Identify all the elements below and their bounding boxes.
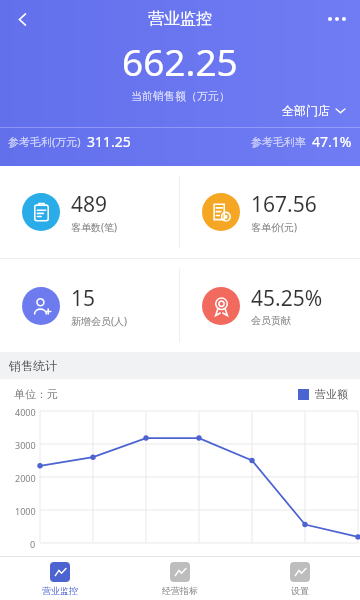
staticText: 营业监控 [42, 585, 78, 596]
staticText: 全部门店 [282, 103, 330, 118]
staticText: 单位：元 [14, 387, 58, 401]
staticText: 15 [71, 284, 96, 313]
staticText: 167.56 [251, 190, 317, 219]
staticText: 参考毛利率 [251, 135, 306, 149]
staticText: 会员贡献 [251, 314, 291, 327]
staticText: 1000 [15, 505, 36, 515]
staticText: 45.25% [251, 284, 323, 313]
staticText: 2000 [15, 472, 36, 482]
staticText: 客单价(元) [251, 220, 297, 234]
staticText: 客单数(笔) [71, 220, 117, 234]
staticText: 当前销售额（万元） [131, 89, 230, 103]
staticText: 经营指标 [162, 585, 198, 596]
staticText: 销售统计 [9, 358, 57, 373]
button[interactable]: Back [0, 0, 44, 38]
button[interactable]: 全部门店 [278, 99, 350, 122]
staticText: 311.25 [87, 132, 131, 151]
staticText: 设置 [291, 585, 309, 596]
button[interactable]: 489 [0, 166, 179, 258]
staticText: 662.25 [122, 36, 238, 86]
button[interactable]: More options [314, 0, 360, 38]
button[interactable]: 设置 [240, 557, 360, 600]
staticText: 47.1% [312, 132, 352, 151]
button[interactable]: 167.56 [180, 166, 360, 258]
staticText: 参考毛利(万元) [8, 134, 81, 149]
button[interactable]: 45.25% [180, 259, 360, 352]
staticText: 营业监控 [148, 9, 212, 29]
staticText: 0 [30, 538, 36, 548]
staticText: 新增会员(人) [71, 314, 127, 328]
button[interactable]: 营业监控 [0, 557, 120, 600]
staticText: 营业额 [315, 387, 348, 401]
button[interactable]: 15 [0, 259, 179, 352]
button[interactable]: 经营指标 [120, 557, 240, 600]
staticText: 3000 [15, 439, 36, 449]
staticText: 4000 [15, 406, 36, 416]
staticText: 489 [71, 190, 108, 219]
